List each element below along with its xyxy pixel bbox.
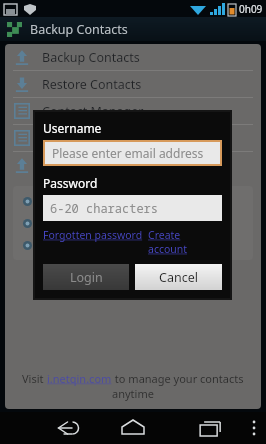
staticText: Visit [22, 371, 47, 386]
button[interactable]: Auto Backup [5, 152, 261, 178]
button[interactable]: Recent apps [186, 412, 226, 444]
staticText: Password [43, 175, 98, 191]
staticText: Backup Contacts [30, 21, 128, 38]
button[interactable]: Cancel [135, 264, 222, 290]
staticText: Auto Backup [42, 157, 117, 174]
button[interactable]: Backup Contacts [5, 44, 261, 70]
staticText: Username [43, 120, 102, 136]
button[interactable]: Forgotten password [43, 228, 143, 242]
button[interactable]: Contact Manager [5, 98, 261, 124]
staticText: anytime [112, 386, 154, 401]
staticText: Contact Manager [42, 103, 144, 120]
button[interactable]: Back [42, 412, 82, 444]
button[interactable]: Home [113, 412, 153, 444]
staticText: 6-20 characters [50, 200, 159, 216]
staticText: Backup Log [42, 130, 111, 147]
button[interactable]: Please enter email address [45, 142, 220, 164]
staticText: Please enter email address [52, 145, 204, 161]
staticText: Login [70, 269, 103, 286]
staticText: i.netqin.com [47, 371, 112, 386]
staticText: Cancel [159, 269, 198, 286]
staticText: to manage your contacts [112, 371, 244, 386]
staticText: Backup Contacts [42, 49, 140, 66]
button[interactable]: i.netqin.com [47, 371, 112, 386]
staticText: Forgotten password [43, 228, 143, 242]
staticText: Restore Contacts [42, 76, 142, 93]
button[interactable]: More options [240, 415, 266, 441]
button[interactable]: Backup Log [5, 125, 261, 151]
staticText: Create account [148, 228, 222, 256]
button[interactable]: Create account [148, 228, 222, 256]
button[interactable]: 6-20 characters [43, 195, 222, 221]
button[interactable]: Restore Contacts [5, 71, 261, 97]
button[interactable]: Login [43, 264, 129, 290]
staticText: 0h09 [239, 2, 263, 16]
